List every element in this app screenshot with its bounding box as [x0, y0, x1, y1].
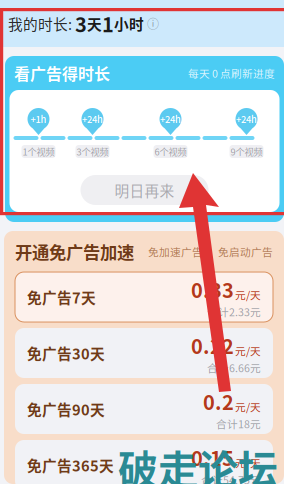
- staticText: 元/天: [235, 287, 261, 302]
- staticText: 元/天: [235, 455, 261, 470]
- staticText: 开通免广告加速: [15, 239, 134, 264]
- staticText: 合计54.75元: [201, 472, 261, 484]
- staticText: 合计2.33元: [207, 304, 261, 319]
- staticText: 0.22: [191, 331, 234, 360]
- staticText: 免广告7天: [27, 286, 96, 308]
- button[interactable]: 免广告90天: [15, 384, 273, 434]
- staticText: ⓘ: [144, 15, 159, 32]
- staticText: 1: [102, 9, 114, 38]
- button[interactable]: 免广告365天: [15, 440, 273, 484]
- staticText: +24h: [160, 112, 181, 126]
- button[interactable]: 免广告30天: [15, 328, 273, 378]
- staticText: +24h: [236, 112, 257, 126]
- staticText: 小时: [114, 13, 144, 34]
- staticText: 合计18元: [216, 416, 261, 431]
- staticText: 我的时长:: [8, 13, 75, 34]
- staticText: 免加速广告 · 免启动广告: [148, 244, 273, 259]
- staticText: 天: [87, 13, 102, 34]
- button[interactable]: 明日再来: [80, 175, 208, 205]
- staticText: 明日再来: [114, 179, 174, 201]
- staticText: +24h: [82, 112, 103, 126]
- staticText: 看广告得时长: [14, 61, 110, 85]
- staticText: 元/天: [235, 399, 261, 414]
- staticText: 合计6.66元: [207, 360, 261, 375]
- staticText: 0.33: [191, 275, 234, 304]
- staticText: 0.2: [203, 387, 234, 416]
- staticText: 元/天: [235, 343, 261, 358]
- staticText: 1个视频: [22, 145, 54, 158]
- staticText: 3个视频: [76, 145, 108, 158]
- staticText: 免广告90天: [27, 398, 105, 420]
- staticText: 3: [75, 9, 87, 38]
- staticText: 免广告365天: [27, 454, 114, 476]
- staticText: 每天 0 点刷新进度: [188, 65, 275, 81]
- staticText: 9个视频: [230, 145, 262, 158]
- button[interactable]: 免广告7天: [15, 272, 273, 322]
- staticText: 6个视频: [154, 145, 186, 158]
- staticText: 0.15: [191, 443, 234, 472]
- staticText: +1h: [30, 112, 46, 126]
- staticText: 破走论坛: [118, 438, 278, 484]
- staticText: 免广告30天: [27, 342, 105, 364]
